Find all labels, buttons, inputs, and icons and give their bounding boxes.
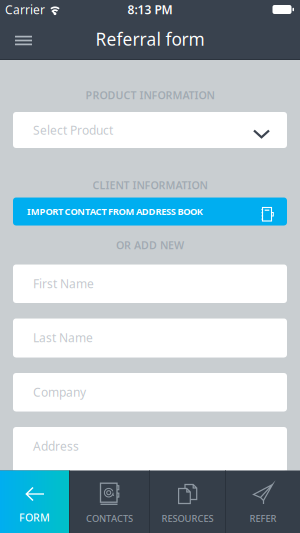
staticText: Last Name <box>33 329 93 345</box>
staticText: IMPORT CONTACT FROM ADDRESS BOOK <box>27 205 203 218</box>
staticText: FORM <box>19 510 50 524</box>
staticText: Address <box>33 438 79 454</box>
staticText: Company <box>33 384 86 400</box>
button[interactable]: Select Product <box>0 112 300 148</box>
button[interactable]: Last Name <box>0 318 300 357</box>
staticText: First Name <box>33 275 94 291</box>
button[interactable]: RESOURCES <box>150 470 225 533</box>
staticText: 8:13 PM <box>127 1 172 17</box>
staticText: CONTACTS <box>86 512 133 524</box>
staticText: Referral form <box>95 27 204 50</box>
staticText: CLIENT INFORMATION <box>92 178 207 192</box>
button[interactable]: First Name <box>0 264 300 303</box>
staticText: RESOURCES <box>161 512 213 524</box>
button[interactable]: Address <box>0 427 300 470</box>
staticText: Select Product <box>33 122 113 138</box>
staticText: PRODUCT INFORMATION <box>85 88 214 102</box>
button[interactable]: IMPORT CONTACT FROM ADDRESS BOOK <box>0 197 300 225</box>
staticText: Carrier <box>5 1 45 17</box>
staticText: OR ADD NEW <box>116 238 184 252</box>
button[interactable]: REFER <box>226 470 300 533</box>
button[interactable] <box>0 22 32 56</box>
staticText: REFER <box>249 512 276 524</box>
button[interactable]: Company <box>0 373 300 411</box>
button[interactable]: CONTACTS <box>70 470 149 533</box>
button[interactable]: FORM <box>0 470 69 533</box>
